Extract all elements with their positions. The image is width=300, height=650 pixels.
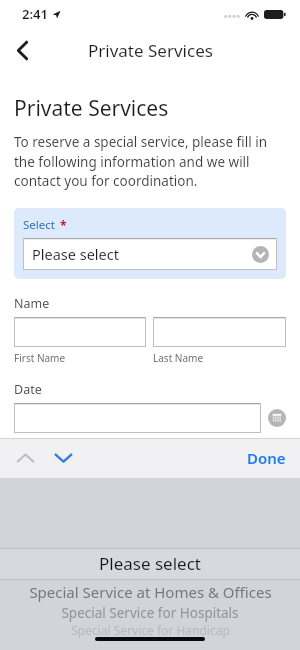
- button[interactable]: Done: [233, 440, 300, 476]
- button[interactable]: [153, 317, 286, 347]
- staticText: *: [60, 217, 67, 233]
- staticText: To reserve a special service, please fil…: [14, 133, 286, 190]
- button[interactable]: Please select: [23, 238, 277, 270]
- staticText: Private Services: [88, 39, 213, 62]
- button[interactable]: Back: [0, 28, 44, 72]
- button[interactable]: Next field: [44, 439, 82, 477]
- button[interactable]: Pick date: [268, 409, 286, 427]
- button[interactable]: [14, 317, 146, 347]
- staticText: 2:41: [22, 5, 48, 23]
- staticText: Special Service at Homes & Offices: [29, 582, 272, 602]
- staticText: Date: [14, 381, 42, 398]
- button[interactable]: Previous field: [6, 439, 44, 477]
- staticText: Special Service for Hospitals: [61, 604, 239, 622]
- staticText: Special Service for Handicap: [71, 622, 230, 638]
- staticText: Private Services: [14, 94, 169, 123]
- staticText: Last Name: [153, 351, 204, 365]
- button[interactable]: Special Service for Handicap: [0, 621, 300, 639]
- button[interactable]: Special Service for Hospitals: [0, 603, 300, 623]
- staticText: Please select: [99, 552, 201, 575]
- other: Open picker: [252, 246, 269, 263]
- staticText: Name: [14, 295, 50, 312]
- button[interactable]: Special Service at Homes & Offices: [0, 581, 300, 603]
- staticText: Select: [23, 217, 55, 233]
- button[interactable]: [14, 403, 261, 433]
- staticText: Please select: [32, 244, 119, 264]
- button[interactable]: Please select: [0, 548, 300, 579]
- staticText: First Name: [14, 351, 66, 365]
- staticText: Done: [247, 448, 286, 468]
